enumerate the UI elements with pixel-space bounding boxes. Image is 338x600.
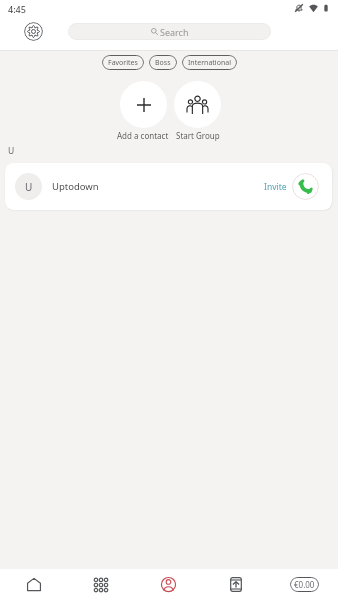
button[interactable]: €0.00 [290,577,319,592]
staticText: Invite [264,181,287,193]
button[interactable]: U [5,163,332,210]
staticText: Add a contact [117,130,169,141]
button[interactable]: Contacts [134,569,202,600]
staticText: €0.00 [294,579,315,590]
button[interactable]: Search [68,23,271,40]
staticText: 4:45 [8,3,26,15]
staticText: Favorites [108,58,138,68]
staticText: Start Group [176,130,220,141]
staticText: Uptodown [52,180,99,193]
button[interactable]: Settings [24,22,43,41]
button[interactable]: Top up [202,569,270,600]
staticText: International [188,58,231,68]
staticText: U [25,180,33,194]
button[interactable]: Invite [262,181,289,193]
staticText: U [8,145,15,157]
button[interactable]: Home [0,569,67,600]
button[interactable]: Start Group [174,81,221,141]
button[interactable]: Boss [149,55,177,70]
button[interactable]: Favorites [102,55,144,70]
staticText: Search [160,26,189,38]
button[interactable]: International [182,55,237,70]
staticText: Boss [155,58,171,68]
button[interactable]: Add a contact [117,81,169,141]
button[interactable]: Keypad [67,569,134,600]
button[interactable]: Call [292,173,319,200]
